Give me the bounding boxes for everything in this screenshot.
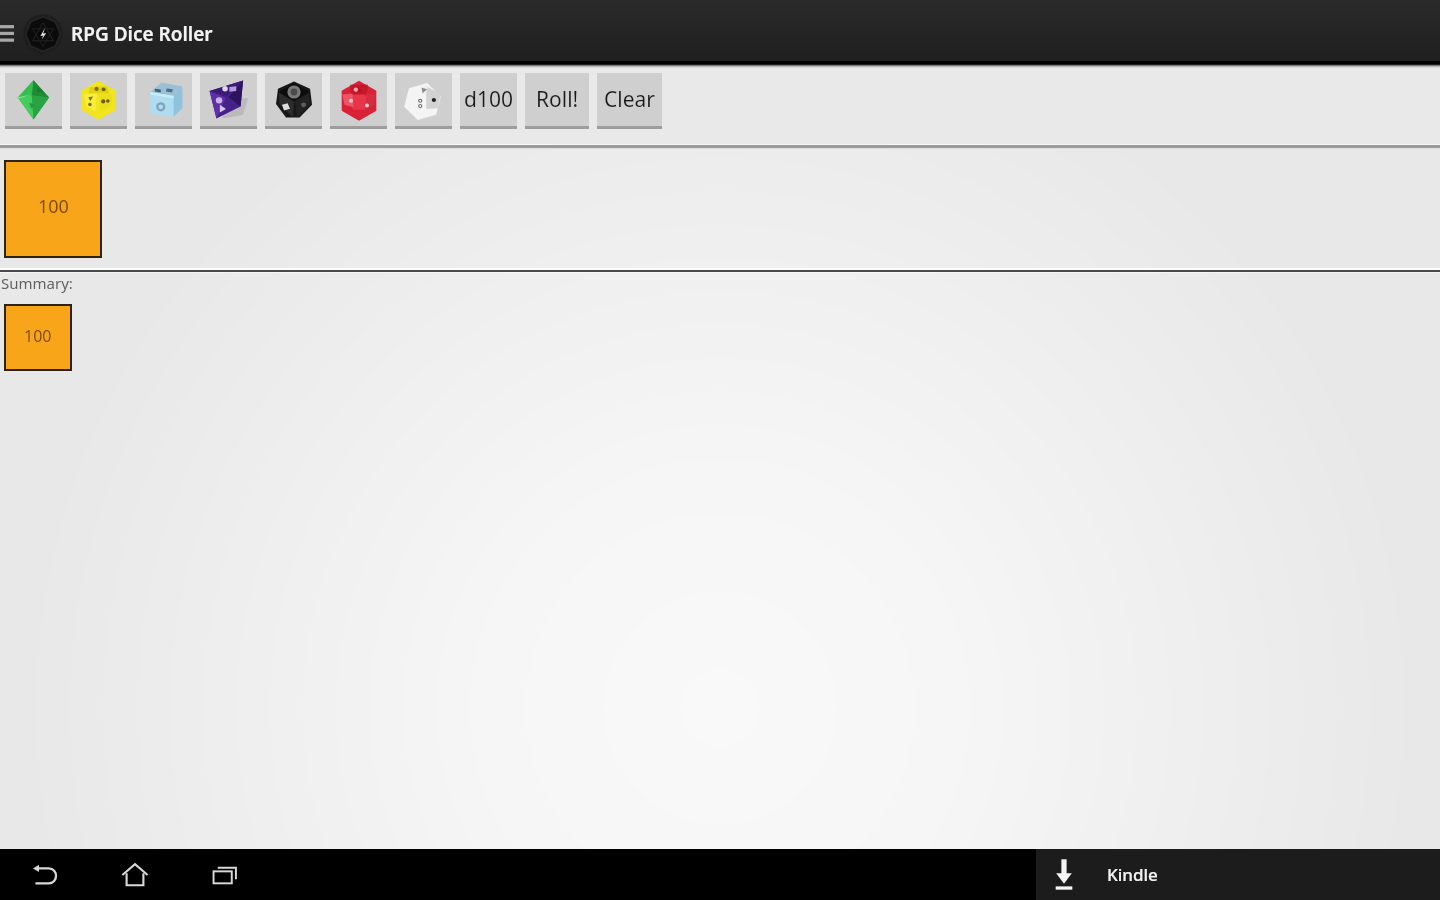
button[interactable]: d100 [460,73,517,126]
staticText: 100 [38,194,69,219]
button[interactable]: Die result 100 [6,306,70,369]
staticText: RPG Dice Roller [71,21,213,47]
staticText: Roll! [536,85,579,114]
staticText: 100 [24,325,52,347]
button[interactable]: Roll d4 [5,73,62,126]
button[interactable]: Kindle [1036,849,1440,900]
button[interactable]: Clear [597,73,662,126]
staticText: Summary: [1,273,73,293]
button[interactable]: Roll! [525,73,589,126]
button[interactable]: Roll d12 [265,73,322,126]
button[interactable]: Roll d10 [200,73,257,126]
button[interactable]: Home [104,849,166,900]
staticText: Kindle [1107,863,1158,886]
button[interactable]: Roll d6 [70,73,127,126]
button[interactable]: Recent apps [194,849,256,900]
button[interactable]: RPG Dice Roller app icon [22,13,64,55]
button[interactable]: Roll d8 [135,73,192,126]
staticText: d100 [464,85,513,114]
staticText: Clear [604,85,655,114]
button[interactable]: Roll d20 [330,73,387,126]
button[interactable]: Back [14,849,76,900]
button[interactable]: Roll d30 [395,73,452,126]
button[interactable]: Die result 100 [6,162,100,256]
button[interactable]: Open navigation menu [0,0,22,68]
